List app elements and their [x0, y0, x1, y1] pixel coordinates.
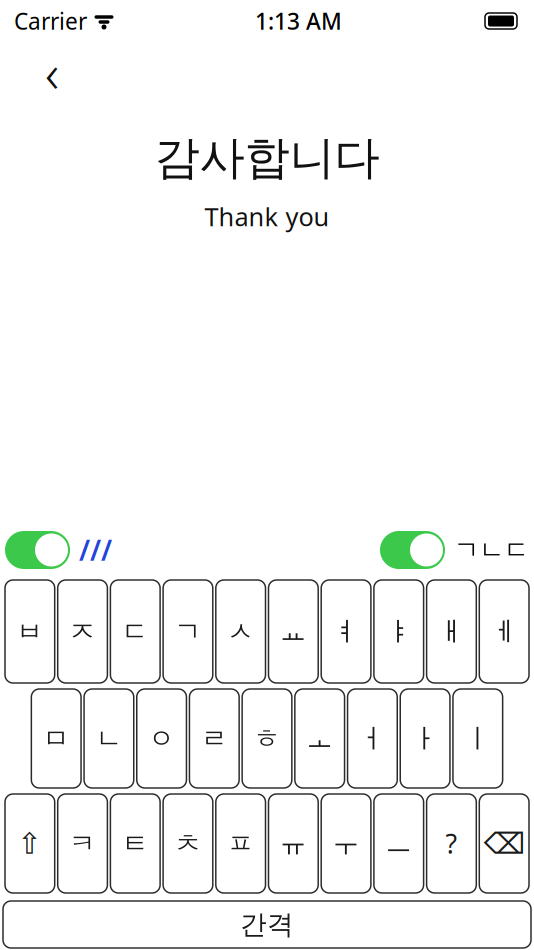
staticText: ㅔ	[491, 615, 518, 648]
button[interactable]: ?	[427, 794, 476, 893]
staticText: ㅂ	[16, 615, 43, 648]
button[interactable]: 간격	[3, 901, 531, 948]
button[interactable]: ㅜ	[321, 794, 371, 893]
button[interactable]: ㅕ	[321, 580, 371, 683]
staticText: ⇧	[17, 827, 42, 860]
button[interactable]: ㄱ	[163, 580, 213, 683]
button[interactable]: ㅊ	[163, 794, 213, 893]
staticText: Carrier	[14, 6, 87, 36]
button[interactable]: ㅁ	[31, 689, 81, 788]
staticText: Thank you	[204, 200, 329, 233]
button[interactable]: ㄴ	[84, 689, 134, 788]
button[interactable]: Back	[30, 50, 74, 94]
button[interactable]: ㅡ	[374, 794, 424, 893]
button[interactable]: ㅎ	[242, 689, 292, 788]
staticText: ㅅ	[227, 615, 254, 648]
staticText: ㅇ	[148, 722, 175, 755]
button[interactable]: ⌫	[479, 794, 529, 893]
button[interactable]: ㅈ	[58, 580, 107, 683]
button[interactable]: ㅐ	[427, 580, 476, 683]
staticText: ㄹ	[201, 722, 228, 755]
staticText: ///	[79, 531, 112, 569]
button[interactable]: ⇧	[5, 794, 55, 893]
staticText: ‹	[45, 37, 59, 107]
staticText: ㅕ	[333, 615, 360, 648]
staticText: ㅌ	[122, 827, 149, 860]
button[interactable]: ㅂ	[5, 580, 55, 683]
staticText: ㅈ	[69, 615, 96, 648]
button[interactable]: ㄹ	[189, 689, 239, 788]
button[interactable]: ㅅ	[216, 580, 265, 683]
button[interactable]: ㅋ	[58, 794, 107, 893]
button[interactable]: ㅍ	[216, 794, 265, 893]
staticText: ㅣ	[464, 722, 491, 755]
button[interactable]: ㅛ	[268, 580, 318, 683]
staticText: 간격	[240, 908, 294, 941]
staticText: ㅠ	[280, 827, 307, 860]
staticText: 감사합니다	[154, 130, 379, 186]
button[interactable]: ㅏ	[400, 689, 450, 788]
button[interactable]	[380, 531, 445, 569]
staticText: ㅛ	[280, 615, 307, 648]
button[interactable]: ㅣ	[453, 689, 503, 788]
button[interactable]	[5, 531, 70, 569]
staticText: ㅓ	[359, 722, 386, 755]
staticText: ⌫	[484, 827, 525, 860]
staticText: ㅎ	[253, 722, 280, 755]
staticText: ㄷ	[122, 615, 149, 648]
button[interactable]: ㅑ	[374, 580, 424, 683]
button[interactable]: ㅌ	[110, 794, 160, 893]
staticText: ㅑ	[385, 615, 412, 648]
staticText: ㅐ	[438, 615, 465, 648]
staticText: ㅍ	[227, 827, 254, 860]
staticText: ㅋ	[69, 827, 96, 860]
button[interactable]: ㅓ	[348, 689, 397, 788]
staticText: ㅁ	[43, 722, 70, 755]
staticText: ㄱㄴㄷ	[454, 534, 529, 565]
staticText: ㄴ	[95, 722, 122, 755]
staticText: ㅏ	[412, 722, 439, 755]
staticText: ㅜ	[333, 827, 360, 860]
button[interactable]: ㅗ	[295, 689, 345, 788]
staticText: ㅡ	[385, 827, 412, 860]
staticText: ?	[445, 826, 457, 861]
staticText: ㄱ	[174, 615, 201, 648]
staticText: ㅗ	[306, 722, 333, 755]
staticText: 1:13 AM	[255, 6, 342, 36]
button[interactable]: ㄷ	[110, 580, 160, 683]
button[interactable]: ㅇ	[137, 689, 186, 788]
staticText: ㅊ	[174, 827, 201, 860]
button[interactable]: ㅔ	[479, 580, 529, 683]
button[interactable]: ㅠ	[268, 794, 318, 893]
